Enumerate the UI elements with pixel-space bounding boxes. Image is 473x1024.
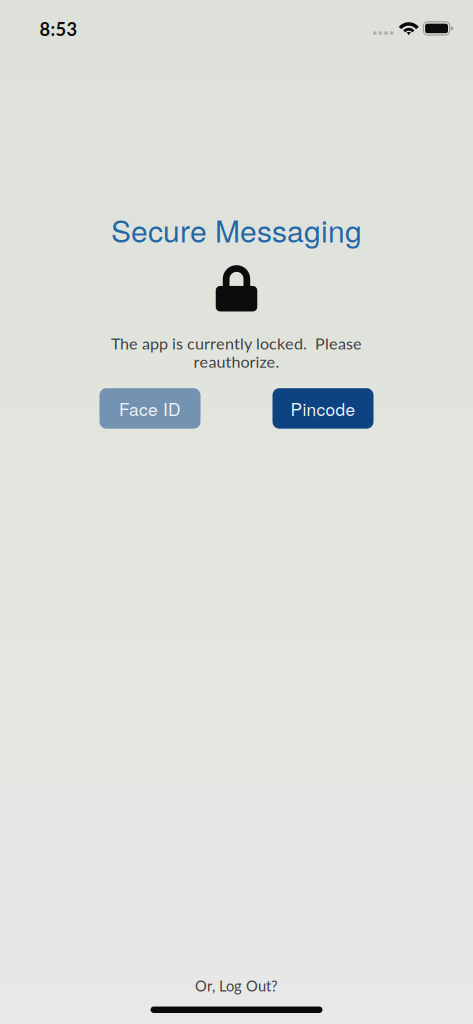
staticText: Secure Messaging (111, 208, 362, 251)
staticText: Or, Log Out? (195, 977, 278, 994)
button[interactable]: Face ID (99, 388, 200, 429)
staticText: Face ID (119, 396, 181, 421)
staticText: reauthorize. (193, 352, 279, 371)
staticText: 8:53 (39, 18, 77, 40)
staticText: Pincode (290, 396, 355, 421)
staticText: The app is currently locked. Please (111, 333, 362, 353)
button[interactable]: Or, Log Out? (195, 977, 278, 994)
button[interactable]: Pincode (272, 388, 373, 429)
